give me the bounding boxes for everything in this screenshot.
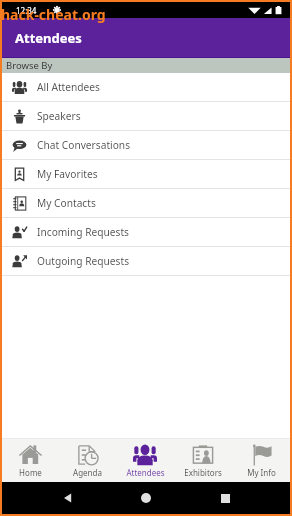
- button[interactable]: Outgoing Requests: [2, 247, 290, 276]
- staticText: Incoming Requests: [37, 225, 129, 239]
- staticText: All Attendees: [37, 80, 100, 94]
- staticText: Attendees: [15, 29, 82, 47]
- button[interactable]: Back: [55, 485, 81, 511]
- staticText: Exhibitors: [184, 467, 222, 478]
- button[interactable]: Incoming Requests: [2, 218, 290, 247]
- staticText: Browse By: [6, 59, 53, 72]
- button[interactable]: Home: [133, 485, 159, 511]
- button[interactable]: Agenda: [59, 443, 116, 478]
- button[interactable]: All Attendees: [2, 73, 290, 102]
- button[interactable]: Chat Conversations: [2, 131, 290, 160]
- button[interactable]: My Contacts: [2, 189, 290, 218]
- button[interactable]: My Favorites: [2, 160, 290, 189]
- staticText: Speakers: [37, 109, 81, 123]
- staticText: My Contacts: [37, 196, 96, 210]
- button[interactable]: Attendees: [116, 443, 174, 478]
- button[interactable]: Speakers: [2, 102, 290, 131]
- staticText: Agenda: [73, 467, 102, 478]
- staticText: My Favorites: [37, 167, 98, 181]
- staticText: My Info: [247, 467, 276, 478]
- staticText: Chat Conversations: [37, 138, 131, 152]
- staticText: Home: [19, 467, 42, 478]
- button[interactable]: Recent apps: [212, 485, 238, 511]
- staticText: Attendees: [126, 467, 165, 478]
- staticText: hack-cheat.org: [1, 5, 106, 24]
- button[interactable]: Home: [2, 443, 59, 478]
- staticText: 12:34: [16, 5, 37, 16]
- button[interactable]: My Info: [232, 443, 290, 478]
- staticText: Outgoing Requests: [37, 254, 130, 268]
- button[interactable]: Exhibitors: [174, 443, 232, 478]
